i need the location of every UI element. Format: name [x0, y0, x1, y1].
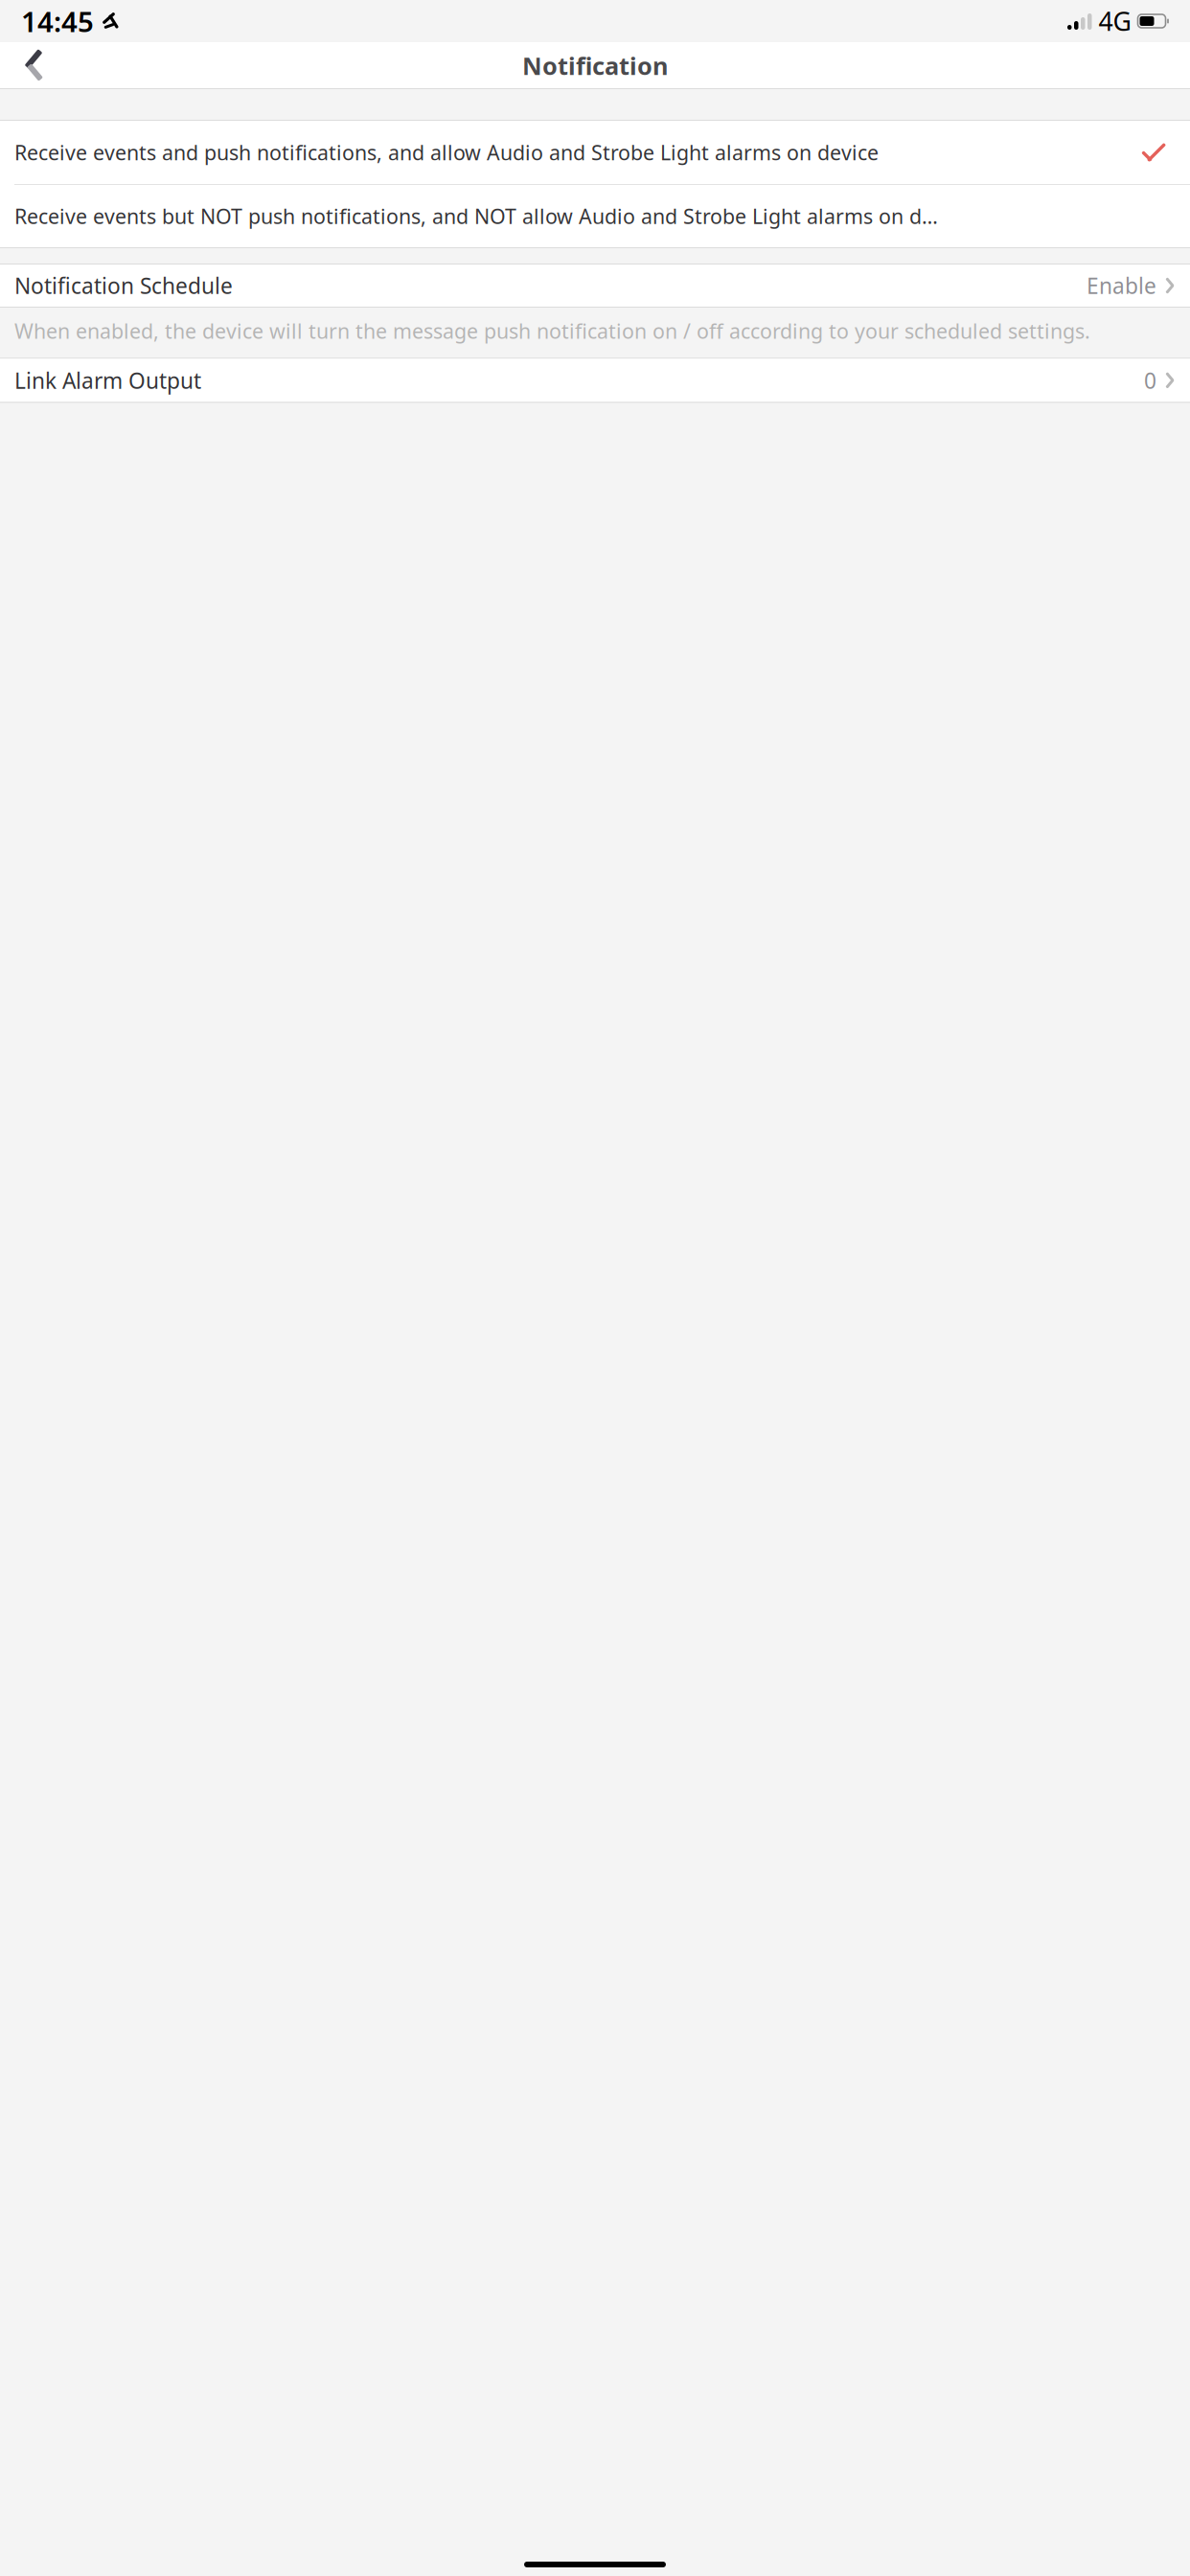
button[interactable]: Back	[8, 42, 59, 89]
staticText: When enabled, the device will turn the m…	[14, 317, 1090, 344]
staticText: Receive events but NOT push notification…	[14, 202, 938, 230]
button[interactable]: Receive events but NOT push notification…	[0, 185, 1190, 247]
staticText: 0	[1144, 366, 1156, 395]
button[interactable]: Link Alarm Output	[0, 359, 1190, 402]
staticText: Notification Schedule	[14, 271, 233, 300]
staticText: Link Alarm Output	[14, 366, 201, 395]
staticText: 4G	[1098, 4, 1131, 38]
staticText: Enable	[1087, 271, 1156, 300]
button[interactable]: Receive events and push notifications, a…	[0, 121, 1190, 184]
button[interactable]: Notification Schedule	[0, 264, 1190, 307]
staticText: Receive events and push notifications, a…	[14, 139, 879, 166]
staticText: Notification	[522, 50, 668, 82]
staticText: 14:45	[21, 2, 94, 40]
